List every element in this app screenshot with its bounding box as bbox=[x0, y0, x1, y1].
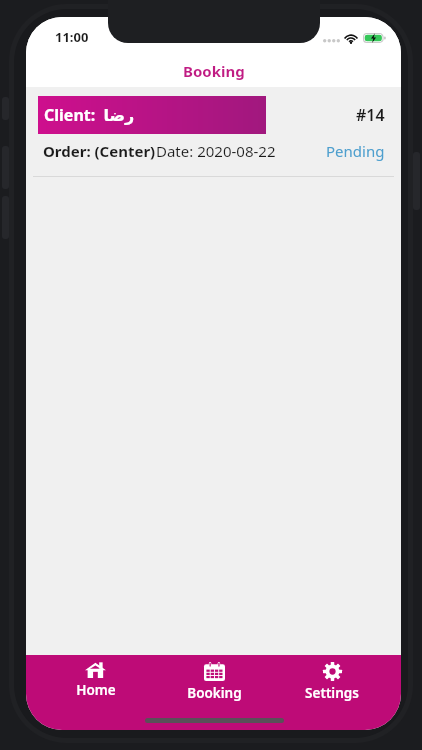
button[interactable]: Client: رضا bbox=[26, 87, 401, 177]
button[interactable]: Settings bbox=[273, 655, 391, 702]
staticText: Settings bbox=[305, 684, 359, 702]
button[interactable]: Booking bbox=[155, 655, 273, 702]
staticText: #14 bbox=[356, 104, 385, 126]
staticText: Order: (Center) bbox=[43, 141, 156, 161]
staticText: Booking bbox=[183, 61, 245, 81]
staticText: Client: رضا bbox=[44, 104, 135, 126]
staticText: Date: 2020-08-22 bbox=[156, 141, 276, 161]
button[interactable]: Home bbox=[36, 655, 155, 699]
staticText: 11:00 bbox=[55, 28, 89, 46]
staticText: Home bbox=[76, 681, 116, 699]
staticText: Pending bbox=[326, 141, 385, 161]
staticText: Booking bbox=[187, 684, 242, 702]
